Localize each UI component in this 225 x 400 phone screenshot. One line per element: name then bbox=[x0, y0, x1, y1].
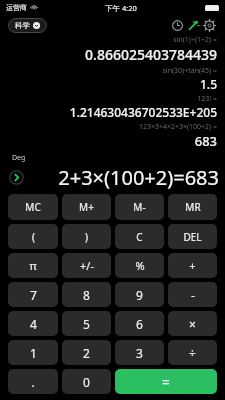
staticText: % bbox=[135, 258, 145, 273]
button[interactable]: π bbox=[8, 253, 58, 278]
button[interactable]: 8 bbox=[62, 282, 111, 307]
staticText: 123! = bbox=[8, 94, 217, 104]
staticText: 0.866025403784439 bbox=[8, 45, 217, 64]
staticText: DEL bbox=[183, 230, 202, 244]
staticText: + bbox=[189, 258, 196, 273]
button[interactable]: 4 bbox=[8, 311, 58, 336]
staticText: . bbox=[31, 374, 35, 390]
button[interactable]: = bbox=[115, 369, 217, 394]
button[interactable]: 科学 bbox=[8, 18, 47, 33]
staticText: 运营商 bbox=[6, 3, 27, 12]
button[interactable]: ÷ bbox=[168, 340, 217, 365]
button[interactable]: C bbox=[115, 224, 164, 249]
staticText: 9 bbox=[136, 287, 143, 303]
staticText: Deg bbox=[12, 153, 26, 163]
button[interactable]: 5 bbox=[62, 311, 111, 336]
button[interactable]: Expand bbox=[8, 169, 25, 186]
button[interactable]: ) bbox=[62, 224, 111, 249]
staticText: 123×3+4×2+3×(100+2) = bbox=[8, 122, 217, 132]
button[interactable]: ( bbox=[8, 224, 58, 249]
staticText: ÷ bbox=[189, 345, 196, 361]
staticText: × bbox=[189, 316, 196, 332]
button[interactable]: % bbox=[115, 253, 164, 278]
staticText: 3 bbox=[136, 345, 143, 361]
button[interactable]: 3 bbox=[115, 340, 164, 365]
button[interactable]: M+ bbox=[62, 194, 111, 220]
staticText: ( bbox=[32, 230, 35, 244]
staticText: 2+3×(100+2)=683 bbox=[25, 164, 219, 190]
button[interactable]: MR bbox=[168, 194, 217, 220]
button[interactable]: 9 bbox=[115, 282, 164, 307]
staticText: π bbox=[29, 258, 37, 273]
button[interactable]: 2 bbox=[62, 340, 111, 365]
button[interactable]: DEL bbox=[168, 224, 217, 249]
staticText: ) bbox=[85, 230, 88, 244]
staticText: 下午 4:20 bbox=[105, 3, 137, 13]
staticText: 2 bbox=[83, 345, 90, 361]
button[interactable]: M- bbox=[115, 194, 164, 220]
staticText: 5 bbox=[83, 316, 90, 332]
staticText: sin(1)÷(1÷2) = bbox=[8, 35, 217, 45]
staticText: +/- bbox=[80, 258, 94, 273]
button[interactable]: . bbox=[8, 369, 58, 394]
button[interactable]: +/- bbox=[62, 253, 111, 278]
staticText: C bbox=[136, 230, 143, 244]
staticText: = bbox=[162, 373, 170, 391]
staticText: M+ bbox=[79, 200, 94, 214]
button[interactable]: + bbox=[168, 253, 217, 278]
staticText: 0 bbox=[83, 374, 90, 390]
staticText: 4 bbox=[30, 316, 37, 332]
staticText: - bbox=[191, 287, 195, 303]
staticText: 8 bbox=[83, 287, 90, 303]
staticText: MC bbox=[25, 200, 41, 214]
staticText: 1 bbox=[30, 345, 37, 361]
button[interactable]: 0 bbox=[62, 369, 111, 394]
button[interactable]: - bbox=[168, 282, 217, 307]
staticText: 683 bbox=[8, 132, 217, 150]
button[interactable]: MC bbox=[8, 194, 58, 220]
button[interactable]: 6 bbox=[115, 311, 164, 336]
staticText: 7 bbox=[30, 287, 37, 303]
staticText: 1.5 bbox=[8, 76, 217, 92]
staticText: 1.214630436702533E+205 bbox=[8, 104, 217, 120]
button[interactable]: Magic bbox=[185, 17, 201, 33]
staticText: M- bbox=[133, 200, 146, 214]
button[interactable]: × bbox=[168, 311, 217, 336]
staticText: 6 bbox=[136, 316, 143, 332]
button[interactable]: History bbox=[169, 17, 185, 33]
button[interactable]: Settings bbox=[201, 17, 217, 33]
staticText: MR bbox=[185, 200, 201, 214]
staticText: 科学 bbox=[15, 21, 30, 30]
staticText: sin(30)+tan(45) = bbox=[8, 66, 217, 76]
button[interactable]: 7 bbox=[8, 282, 58, 307]
button[interactable]: 1 bbox=[8, 340, 58, 365]
